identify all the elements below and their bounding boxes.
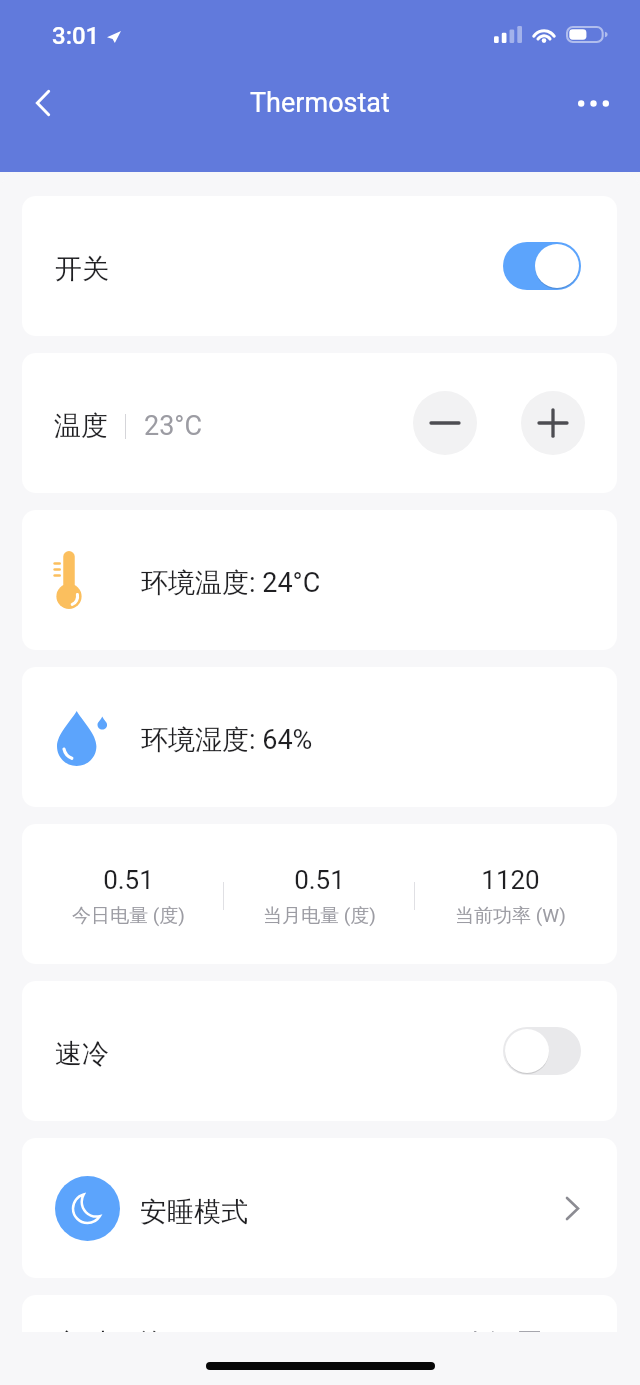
staticText: 3:01 xyxy=(52,22,100,50)
staticText: 未设置 xyxy=(462,1327,543,1332)
staticText: 温度 xyxy=(54,409,108,443)
button[interactable]: Back xyxy=(18,78,68,128)
staticText: Thermostat xyxy=(250,87,390,119)
staticText: 定时开关 xyxy=(55,1327,163,1332)
staticText: 当月电量 (度) xyxy=(263,904,376,928)
staticText: 今日电量 (度) xyxy=(72,904,185,928)
staticText: 0.51 xyxy=(294,865,345,895)
button[interactable]: Turn off xyxy=(503,242,581,290)
staticText: 速冷 xyxy=(55,1037,109,1071)
staticText: 23°C xyxy=(144,410,203,442)
staticText: 环境湿度: 64% xyxy=(141,723,313,757)
button[interactable]: Turn on xyxy=(503,1027,581,1075)
staticText: 当前功率 (W) xyxy=(455,904,566,928)
button[interactable]: Increase temperature xyxy=(521,391,585,455)
staticText: 环境温度: 24°C xyxy=(141,566,321,600)
staticText: 0.51 xyxy=(103,865,154,895)
button[interactable]: More options xyxy=(568,78,619,128)
staticText: 1120 xyxy=(481,865,540,895)
staticText: 安睡模式 xyxy=(140,1195,248,1229)
button[interactable] xyxy=(22,1138,617,1278)
staticText: 开关 xyxy=(55,252,109,286)
button[interactable]: Decrease temperature xyxy=(413,391,477,455)
